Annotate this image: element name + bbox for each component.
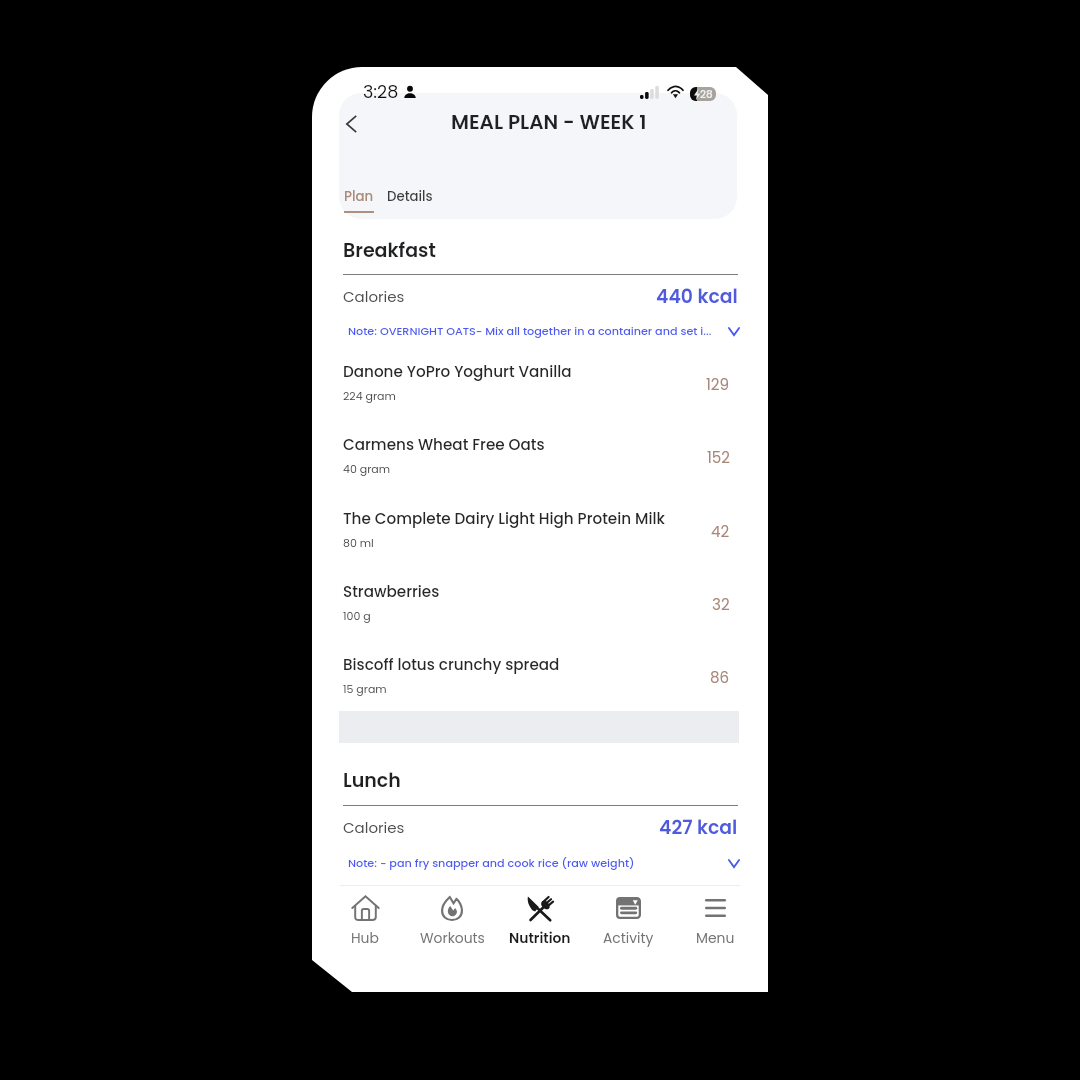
staticText: Carmens Wheat Free Oats — [343, 434, 545, 455]
staticText: Breakfast — [343, 237, 436, 264]
button[interactable]: Biscoff lotus crunchy spread — [343, 648, 730, 701]
staticText: 152 — [707, 447, 730, 468]
staticText: 32 — [712, 594, 730, 615]
staticText: 3:28 — [363, 80, 399, 105]
button[interactable]: Back — [334, 107, 368, 141]
button[interactable]: Nutrition — [497, 894, 583, 947]
staticText: 129 — [706, 374, 730, 395]
staticText: Activity — [603, 928, 654, 947]
button[interactable]: Plan — [342, 187, 376, 213]
staticText: 224 gram — [343, 388, 396, 403]
button[interactable]: Danone YoPro Yoghurt Vanilla — [343, 355, 730, 408]
staticText: Plan — [344, 187, 374, 206]
staticText: MEAL PLAN - WEEK 1 — [451, 108, 647, 136]
staticText: 86 — [710, 667, 730, 688]
staticText: 15 gram — [343, 681, 387, 696]
button[interactable]: Strawberries — [343, 575, 730, 628]
staticText: Details — [387, 187, 433, 206]
staticText: 100 g — [343, 608, 371, 623]
button[interactable]: Activity — [585, 894, 671, 947]
staticText: Nutrition — [509, 928, 571, 947]
button[interactable]: Hub — [322, 894, 408, 947]
staticText: Menu — [696, 928, 735, 947]
button[interactable]: Workouts — [409, 894, 495, 947]
staticText: Hub — [351, 928, 379, 947]
button[interactable]: Note: OVERNIGHT OATS- Mix all together i… — [348, 321, 740, 341]
button[interactable]: Note: - pan fry snapper and cook rice (r… — [348, 853, 740, 873]
staticText: Note: - pan fry snapper and cook rice (r… — [348, 855, 724, 871]
staticText: 28 — [700, 87, 713, 101]
button[interactable]: The Complete Dairy Light High Protein Mi… — [343, 502, 730, 555]
staticText: Note: OVERNIGHT OATS- Mix all together i… — [348, 323, 724, 339]
staticText: Danone YoPro Yoghurt Vanilla — [343, 361, 572, 382]
staticText: 440 kcal — [656, 283, 738, 309]
staticText: Calories — [343, 817, 405, 838]
staticText: Calories — [343, 286, 405, 307]
staticText: 80 ml — [343, 535, 374, 550]
staticText: The Complete Dairy Light High Protein Mi… — [343, 508, 665, 529]
staticText: 42 — [711, 521, 730, 542]
staticText: Lunch — [343, 767, 401, 794]
staticText: Biscoff lotus crunchy spread — [343, 654, 560, 675]
staticText: 40 gram — [343, 461, 391, 476]
staticText: Strawberries — [343, 581, 440, 602]
button[interactable]: Carmens Wheat Free Oats — [343, 428, 730, 481]
staticText: Workouts — [420, 928, 485, 947]
button[interactable]: Details — [387, 187, 433, 206]
button[interactable]: Menu — [672, 894, 758, 947]
staticText: 427 kcal — [659, 814, 738, 840]
